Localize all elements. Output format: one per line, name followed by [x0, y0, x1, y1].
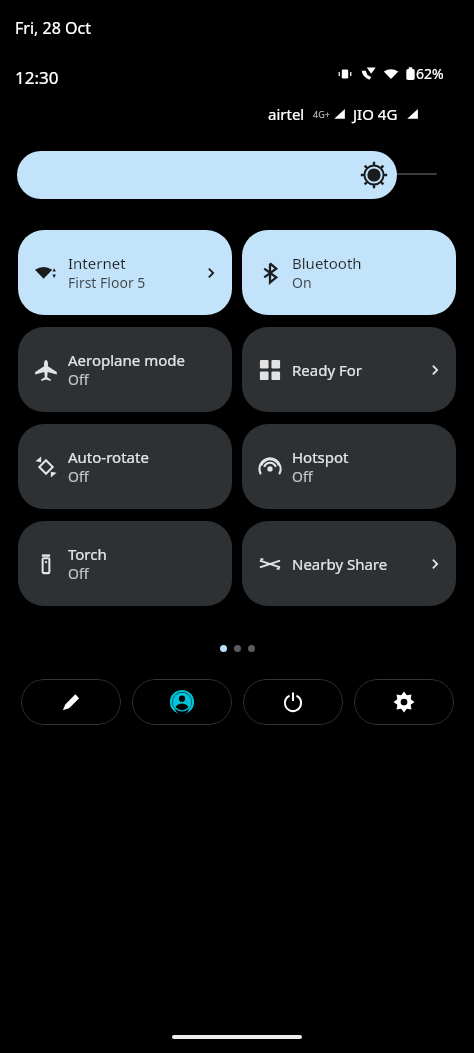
button[interactable]: Torch: [18, 521, 232, 606]
button[interactable]: Nearby Share: [242, 521, 456, 606]
button[interactable]: Hotspot: [242, 424, 456, 509]
staticText: JIO 4G: [353, 104, 398, 124]
button[interactable]: Auto-rotate: [18, 424, 232, 509]
staticText: Off: [68, 564, 89, 583]
staticText: 12:30: [15, 66, 59, 89]
button[interactable]: Settings: [354, 679, 454, 725]
staticText: Off: [68, 370, 89, 389]
staticText: Off: [292, 467, 313, 486]
button[interactable]: Aeroplane mode: [18, 327, 232, 412]
button[interactable]: Internet: [18, 230, 232, 315]
button[interactable]: Power: [243, 679, 343, 725]
staticText: Hotspot: [292, 447, 349, 467]
staticText: Off: [68, 467, 89, 486]
staticText: Nearby Share: [292, 554, 388, 574]
staticText: Fri, 28 Oct: [15, 17, 91, 39]
button[interactable]: Bluetooth: [242, 230, 456, 315]
staticText: airtel: [268, 104, 305, 124]
button[interactable]: Brightness: [17, 151, 397, 199]
staticText: Ready For: [292, 360, 363, 380]
staticText: Torch: [68, 544, 107, 564]
button[interactable]: User: [132, 679, 232, 725]
staticText: Auto-rotate: [68, 447, 149, 467]
staticText: Bluetooth: [292, 253, 362, 273]
staticText: 4G+: [313, 108, 330, 120]
staticText: Aeroplane mode: [68, 350, 185, 370]
staticText: On: [292, 273, 312, 292]
staticText: First Floor 5: [68, 273, 146, 292]
staticText: Internet: [68, 253, 126, 273]
staticText: 62%: [416, 64, 444, 83]
button[interactable]: Ready For: [242, 327, 456, 412]
button[interactable]: Edit: [21, 679, 121, 725]
